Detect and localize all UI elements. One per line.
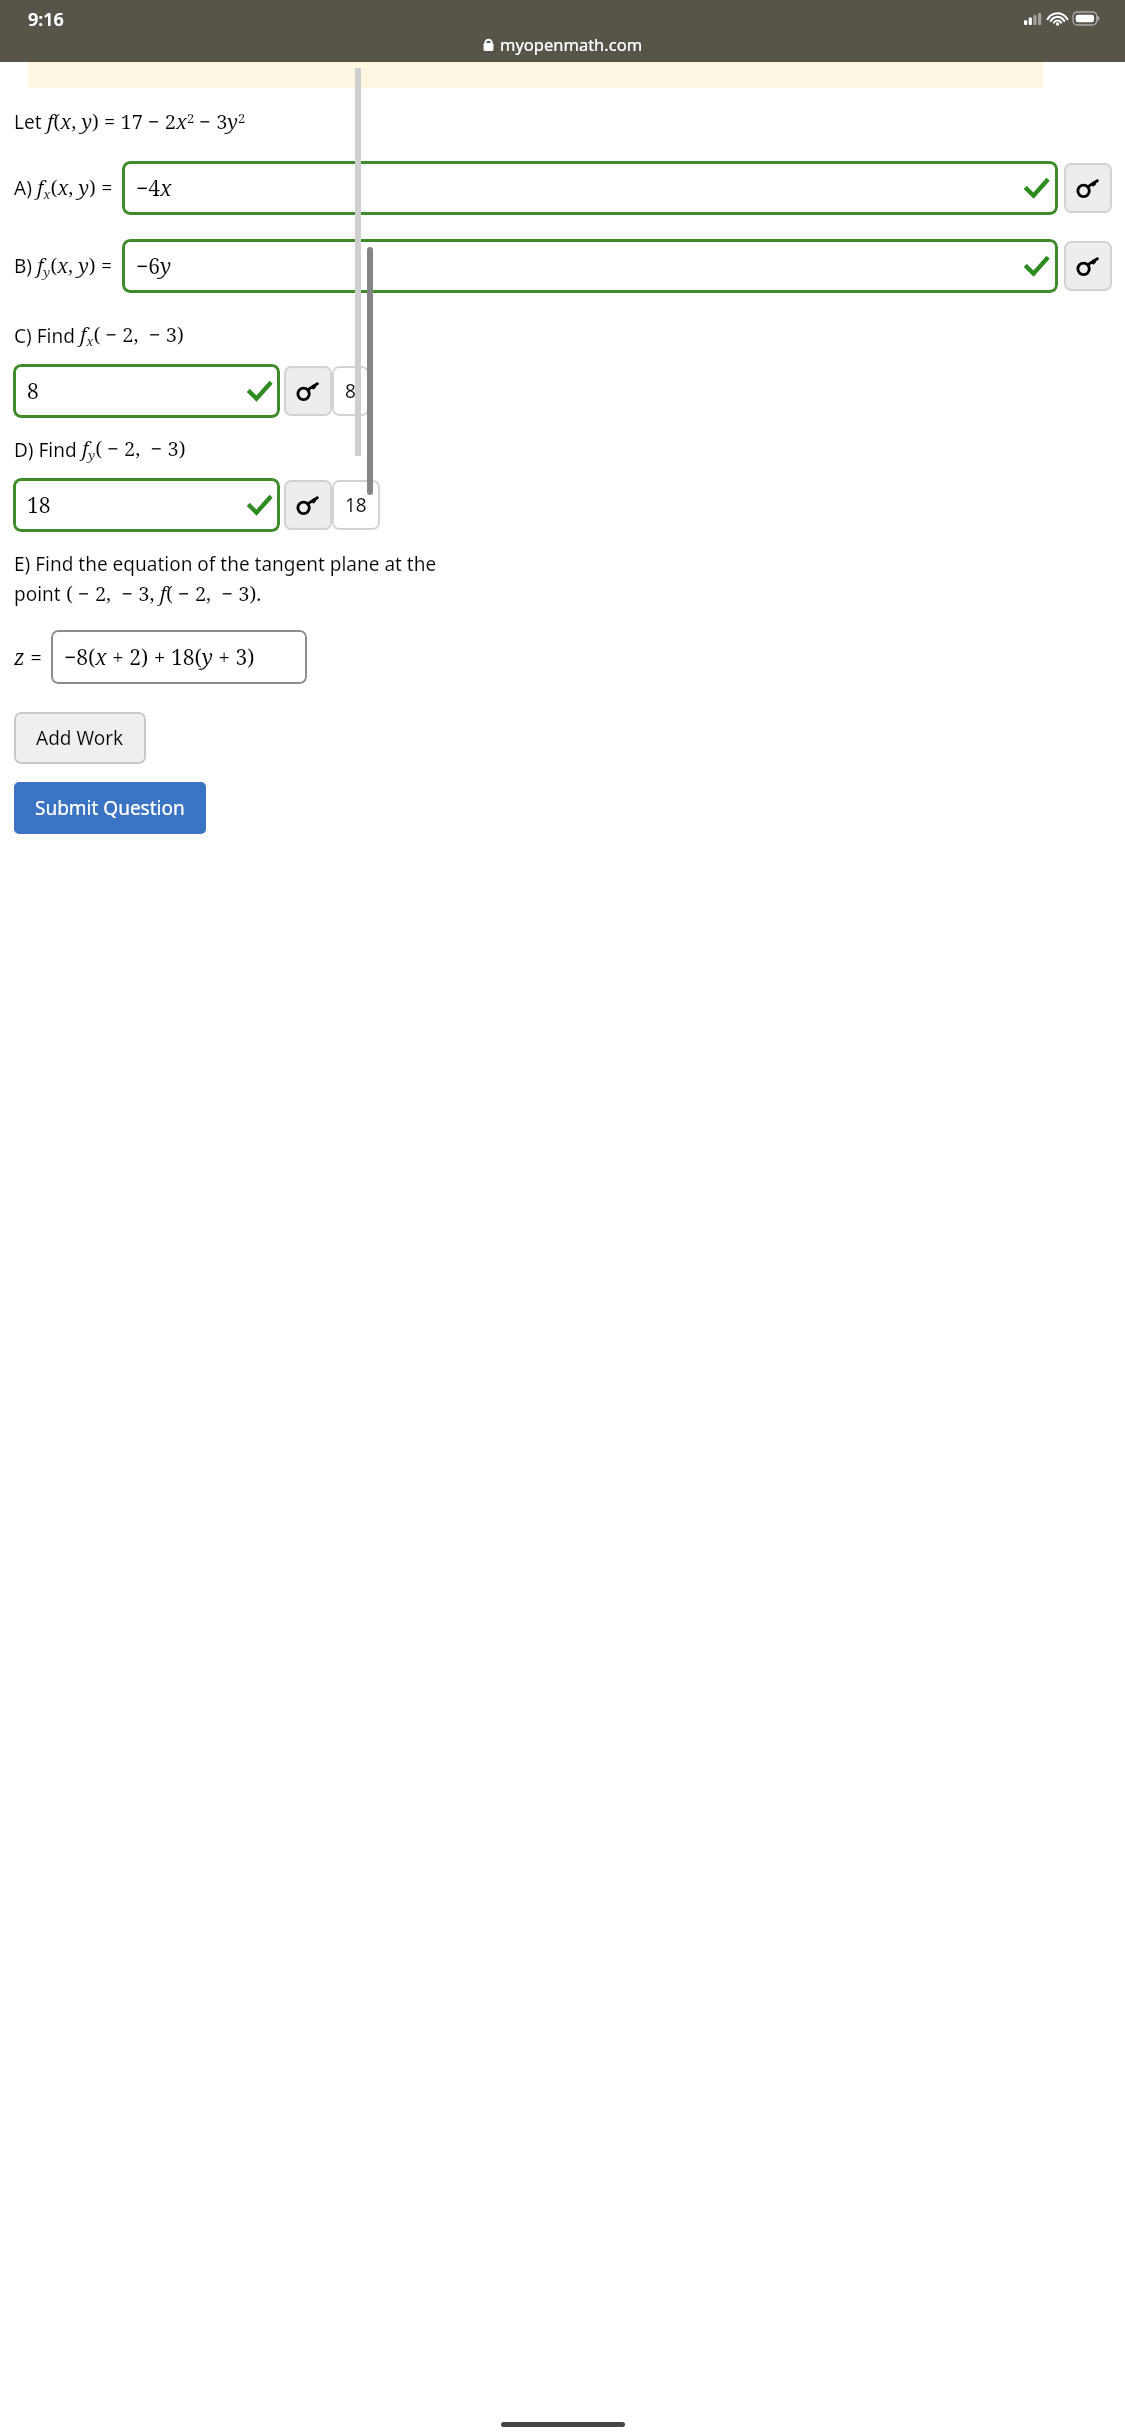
staticText: Submit Question — [35, 795, 185, 821]
staticText: A) — [14, 175, 37, 201]
staticText: ( − 2, − 3, f( − 2, − 3). — [66, 580, 262, 607]
button[interactable]: Show answer key — [1064, 163, 1112, 213]
staticText: −6y — [136, 252, 171, 281]
staticText: 9:16 — [28, 7, 64, 32]
staticText: E) Find the equation of the tangent plan… — [14, 551, 437, 577]
staticText: Let — [14, 109, 47, 135]
staticText: 18 — [345, 492, 367, 518]
button[interactable]: 8 — [13, 364, 280, 418]
staticText: 18 — [27, 491, 51, 520]
staticText: myopenmath.com — [500, 33, 643, 55]
button[interactable]: −4x — [122, 161, 1058, 215]
staticText: z = — [14, 643, 42, 672]
staticText: D) Find — [14, 437, 82, 463]
button[interactable]: −8(x + 2) + 18(y + 3) — [51, 630, 307, 684]
staticText: 8 — [27, 377, 39, 406]
button[interactable]: Submit Question — [14, 782, 206, 834]
staticText: fy( − 2, − 3) — [82, 435, 186, 464]
button[interactable]: Add Work — [14, 712, 146, 764]
button[interactable]: 18 — [13, 478, 280, 532]
button[interactable]: Show answer key — [284, 366, 332, 416]
button[interactable]: Show answer key — [284, 480, 332, 530]
staticText: fx(x, y) = — [37, 174, 113, 203]
staticText: C) Find — [14, 323, 80, 349]
staticText: fx( − 2, − 3) — [80, 321, 184, 350]
staticText: B) — [14, 253, 37, 279]
staticText: fy(x, y) = — [37, 252, 113, 281]
staticText: f(x, y) = 17 − 2x2 − 3y2 — [47, 108, 246, 135]
button[interactable]: myopenmath.com — [479, 33, 647, 55]
staticText: 8 — [345, 378, 356, 404]
button[interactable]: 18 — [332, 480, 380, 530]
staticText: −8(x + 2) + 18(y + 3) — [64, 643, 255, 672]
button[interactable]: Show answer key — [1064, 241, 1112, 291]
button[interactable]: 8 — [332, 366, 369, 416]
staticText: point — [14, 581, 66, 607]
button[interactable]: −6y — [122, 239, 1058, 293]
staticText: Add Work — [36, 725, 124, 751]
staticText: −4x — [136, 174, 172, 203]
